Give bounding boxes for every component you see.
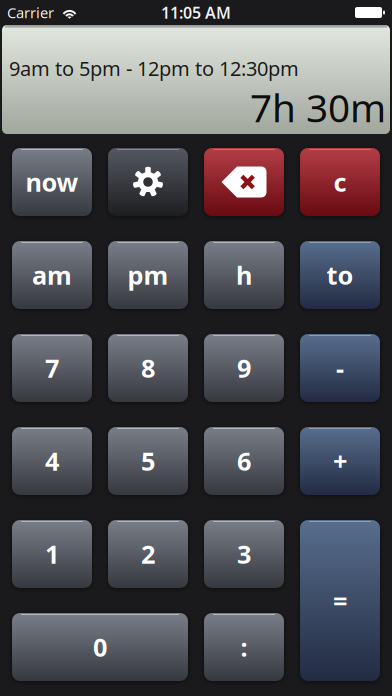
staticText: now <box>25 165 78 199</box>
button[interactable]: : <box>204 613 284 681</box>
staticText: h <box>236 258 252 292</box>
button[interactable]: 2 <box>108 520 188 588</box>
staticText: : <box>240 630 247 664</box>
staticText: + <box>333 444 347 478</box>
button[interactable]: 9 <box>204 334 284 402</box>
button[interactable]: to <box>300 241 380 309</box>
staticText: 11:05 AM <box>161 2 231 23</box>
button[interactable]: Delete <box>204 148 284 216</box>
staticText: Carrier <box>7 3 54 22</box>
staticText: - <box>336 351 344 385</box>
staticText: = <box>333 584 347 617</box>
staticText: to <box>326 258 353 292</box>
button[interactable]: c <box>300 148 380 216</box>
button[interactable]: 6 <box>204 427 284 495</box>
button[interactable]: 4 <box>12 427 92 495</box>
staticText: am <box>32 258 72 292</box>
button[interactable]: 7 <box>12 334 92 402</box>
button[interactable]: h <box>204 241 284 309</box>
button[interactable]: now <box>12 148 92 216</box>
button[interactable]: - <box>300 334 380 402</box>
button[interactable]: + <box>300 427 380 495</box>
staticText: 0 <box>93 630 107 664</box>
staticText: 5 <box>141 444 155 478</box>
button[interactable]: am <box>12 241 92 309</box>
button[interactable]: 5 <box>108 427 188 495</box>
button[interactable]: 8 <box>108 334 188 402</box>
button[interactable]: 1 <box>12 520 92 588</box>
staticText: 9am to 5pm - 12pm to 12:30pm <box>9 55 299 82</box>
staticText: c <box>333 165 346 199</box>
staticText: 8 <box>141 351 155 385</box>
button[interactable]: = <box>300 520 380 681</box>
staticText: 4 <box>45 444 59 478</box>
button[interactable]: 0 <box>12 613 188 681</box>
staticText: 2 <box>141 537 155 571</box>
staticText: pm <box>127 258 168 292</box>
button[interactable]: 3 <box>204 520 284 588</box>
staticText: 9 <box>237 351 251 385</box>
staticText: 1 <box>45 537 59 571</box>
button[interactable]: pm <box>108 241 188 309</box>
staticText: 7 <box>45 351 59 385</box>
staticText: 7h 30m <box>250 82 386 133</box>
button[interactable]: Settings <box>108 148 188 216</box>
staticText: 3 <box>237 537 251 571</box>
staticText: 6 <box>237 444 251 478</box>
